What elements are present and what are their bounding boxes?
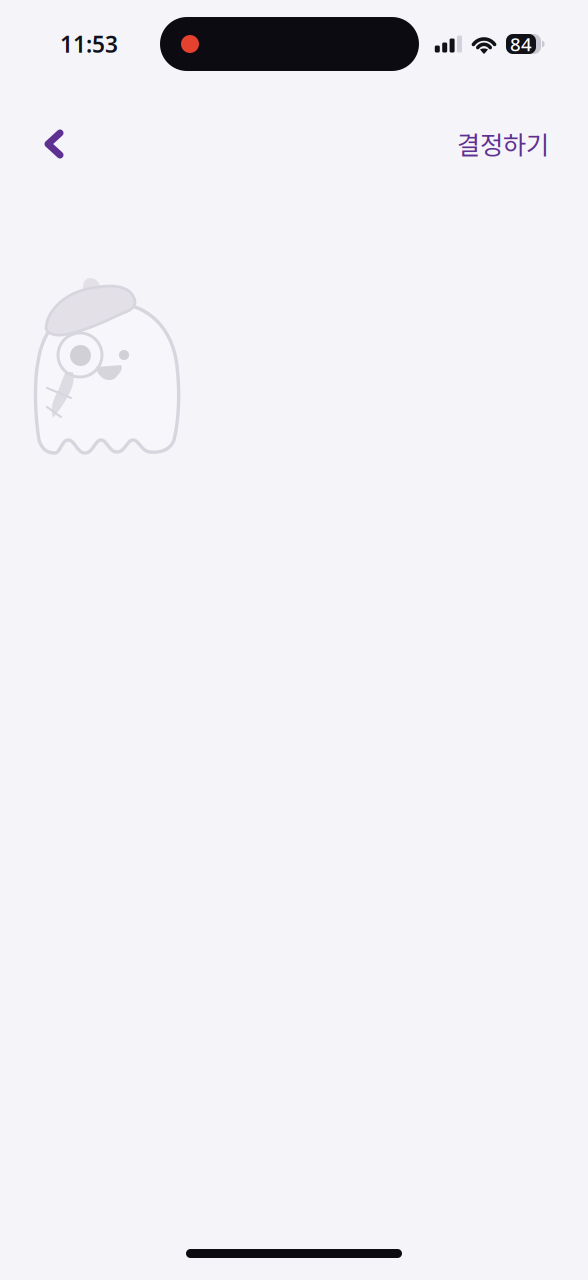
staticText: 11:53 — [60, 29, 118, 59]
staticText: 결정하기 — [457, 125, 549, 162]
button[interactable]: Back — [0, 102, 82, 162]
staticText: 84 — [510, 32, 532, 56]
button[interactable]: 결정하기 — [457, 95, 588, 169]
